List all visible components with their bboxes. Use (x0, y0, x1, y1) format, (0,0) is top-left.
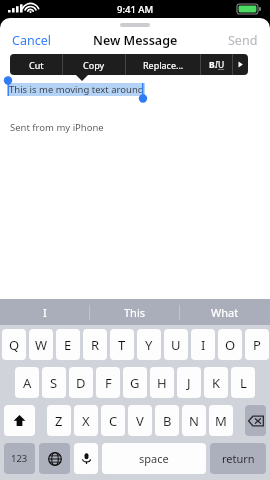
staticText: Copy (83, 59, 105, 71)
button[interactable]: Shift (4, 405, 35, 436)
button[interactable]: J (177, 367, 201, 398)
button[interactable]: Z (47, 405, 71, 436)
staticText: W (35, 336, 48, 354)
staticText: S (50, 374, 58, 392)
staticText: Replace... (143, 59, 184, 71)
staticText: U (171, 336, 181, 354)
staticText: This (124, 305, 146, 320)
staticText: I (43, 305, 47, 320)
staticText: O (225, 336, 236, 354)
button[interactable]: Y (137, 329, 161, 360)
button[interactable]: K (204, 367, 228, 398)
button[interactable]: Dictate (74, 443, 98, 474)
staticText: M (215, 412, 227, 430)
staticText: A (23, 374, 32, 392)
button[interactable]: Q (2, 329, 26, 360)
button[interactable]: B (201, 54, 232, 75)
staticText: T (118, 336, 126, 354)
button[interactable]: R (83, 329, 107, 360)
staticText: D (76, 374, 86, 392)
staticText: K (212, 374, 221, 392)
button[interactable]: Change keyboard (39, 443, 70, 474)
staticText: What (211, 305, 239, 320)
staticText: I (215, 59, 218, 71)
staticText: R (91, 336, 100, 354)
staticText: E (64, 336, 72, 354)
staticText: Send (228, 32, 258, 49)
button[interactable]: I (0, 299, 89, 325)
button[interactable]: Replace... (126, 54, 200, 75)
button[interactable]: W (29, 329, 53, 360)
staticText: Cut (29, 59, 44, 71)
staticText: J (187, 374, 191, 392)
staticText: V (136, 412, 144, 430)
staticText: F (105, 374, 112, 392)
staticText: 9:41 AM (117, 3, 154, 16)
button[interactable]: Cut (10, 54, 62, 75)
staticText: G (130, 374, 140, 392)
button[interactable]: D (69, 367, 93, 398)
button[interactable]: A (15, 367, 39, 398)
button[interactable]: This (90, 299, 179, 325)
button[interactable]: space (102, 443, 206, 474)
staticText: N (189, 412, 199, 430)
staticText: Y (145, 336, 153, 354)
staticText: C (109, 412, 118, 430)
button[interactable]: S (42, 367, 66, 398)
button[interactable]: M (209, 405, 233, 436)
staticText: X (82, 412, 90, 430)
staticText: Q (9, 336, 20, 354)
staticText: 123 (11, 452, 28, 465)
button[interactable]: H (150, 367, 174, 398)
staticText: L (240, 374, 247, 392)
button[interactable]: P (245, 329, 269, 360)
staticText: Cancel (12, 32, 51, 49)
staticText: Sent from my iPhone (10, 121, 104, 134)
staticText: U (218, 59, 225, 71)
button[interactable]: G (123, 367, 147, 398)
button[interactable]: Backspace (245, 405, 266, 436)
staticText: P (253, 336, 261, 354)
button[interactable]: V (128, 405, 152, 436)
staticText: return (222, 451, 255, 466)
button[interactable]: U (164, 329, 188, 360)
button[interactable]: X (74, 405, 98, 436)
button[interactable]: B (155, 405, 179, 436)
staticText: This is me moving text around (9, 83, 144, 96)
button[interactable]: O (218, 329, 242, 360)
button[interactable]: C (101, 405, 125, 436)
button[interactable]: What (180, 299, 269, 325)
button[interactable]: 123 (4, 443, 35, 474)
staticText: I (201, 336, 206, 354)
button[interactable]: F (96, 367, 120, 398)
button[interactable]: L (231, 367, 255, 398)
button[interactable]: I (191, 329, 215, 360)
staticText: B (209, 59, 215, 71)
button[interactable]: E (56, 329, 80, 360)
staticText: space (139, 451, 169, 466)
button[interactable]: return (210, 443, 266, 474)
button[interactable]: Copy (63, 54, 125, 75)
staticText: H (157, 374, 167, 392)
button[interactable]: T (110, 329, 134, 360)
button[interactable]: Send (216, 28, 270, 53)
button[interactable]: More options (233, 54, 248, 75)
staticText: New Message (93, 32, 178, 49)
staticText: B (163, 412, 172, 430)
button[interactable]: Cancel (0, 28, 63, 53)
staticText: Z (55, 412, 63, 430)
button[interactable]: N (182, 405, 206, 436)
